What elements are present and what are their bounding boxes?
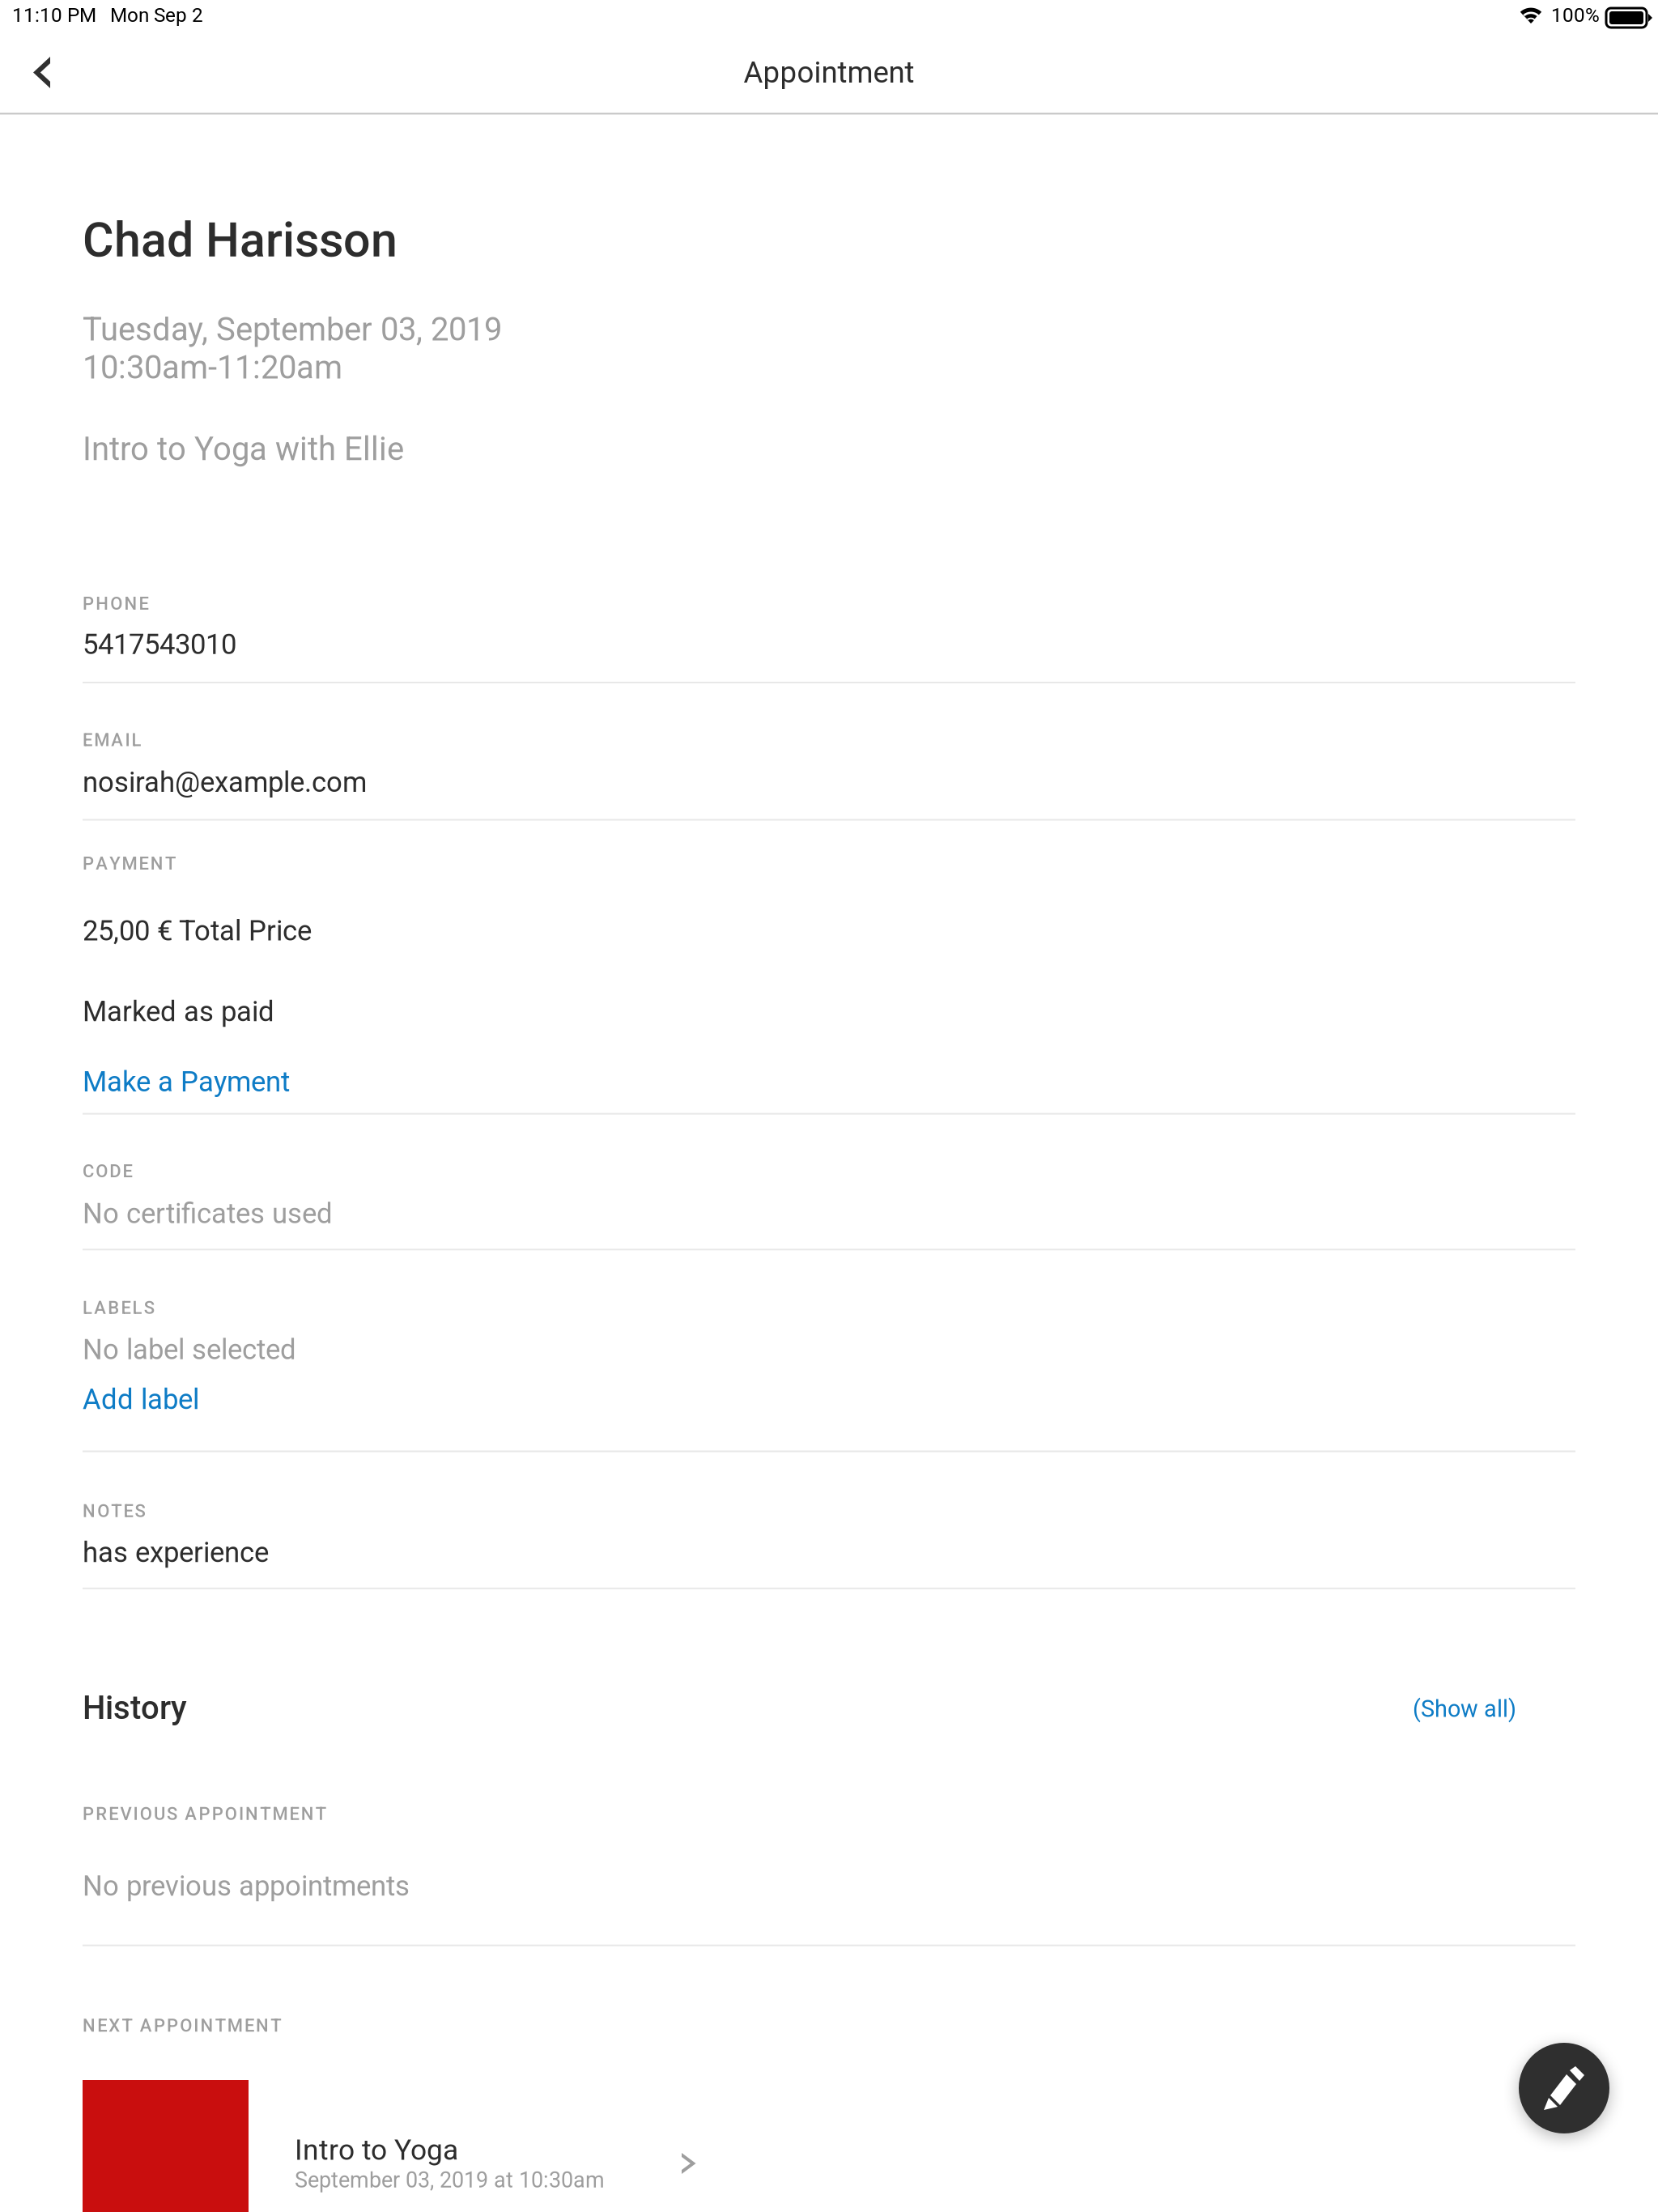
staticText: N: [83, 1501, 96, 1522]
staticText: T: [165, 853, 176, 874]
staticText: Marked as paid: [83, 995, 274, 1028]
button[interactable]: Make a Payment: [83, 1065, 290, 1098]
staticText: 5417543010: [83, 628, 236, 661]
staticText: E: [121, 1297, 131, 1318]
staticText: 11:10 PM: [12, 4, 96, 27]
staticText: N: [124, 593, 137, 614]
staticText: P: [167, 2015, 178, 2036]
staticText: P: [154, 2015, 165, 2036]
staticText: (Show all): [1413, 1695, 1516, 1723]
staticText: A: [185, 1803, 197, 1824]
staticText: N: [301, 1803, 314, 1824]
staticText: O: [110, 593, 122, 614]
staticText: P: [83, 593, 94, 614]
staticText: N: [150, 853, 163, 874]
staticText: A: [94, 1297, 106, 1318]
staticText: nosirah@example.com: [83, 766, 367, 799]
staticText: S: [144, 1297, 154, 1318]
staticText: L: [132, 1297, 142, 1318]
staticText: P: [83, 853, 94, 874]
staticText: A: [111, 730, 123, 750]
staticText: Appointment: [744, 55, 914, 90]
staticText: C: [83, 1161, 94, 1182]
staticText: E: [83, 730, 92, 750]
staticText: T: [215, 2015, 226, 2036]
staticText: T: [316, 1803, 326, 1824]
staticText: L: [132, 730, 141, 750]
staticText: M: [272, 1803, 288, 1824]
staticText: I: [194, 2015, 199, 2036]
staticText: O: [225, 1803, 237, 1824]
staticText: M: [227, 2015, 243, 2036]
staticText: History: [83, 1689, 187, 1727]
staticText: B: [108, 1297, 119, 1318]
staticText: N: [83, 2015, 96, 2036]
staticText: I: [239, 1803, 244, 1824]
staticText: Add label: [83, 1383, 199, 1416]
staticText: P: [212, 1803, 223, 1824]
staticText: E: [139, 593, 149, 614]
staticText: September 03, 2019 at 10:30am: [295, 2167, 605, 2193]
staticText: A: [96, 853, 108, 874]
staticText: N: [245, 1803, 258, 1824]
staticText: T: [271, 2015, 281, 2036]
staticText: O: [180, 2015, 192, 2036]
button[interactable]: Edit: [1519, 2043, 1609, 2133]
staticText: E: [244, 2015, 254, 2036]
button[interactable]: Back: [4, 36, 79, 110]
staticText: Intro to Yoga with Ellie: [83, 430, 404, 468]
staticText: N: [256, 2015, 269, 2036]
staticText: E: [97, 2015, 107, 2036]
staticText: O: [96, 1161, 108, 1182]
staticText: A: [140, 2015, 152, 2036]
staticText: E: [139, 853, 149, 874]
staticText: No previous appointments: [83, 1870, 410, 1902]
staticText: M: [122, 853, 137, 874]
staticText: has experience: [83, 1536, 269, 1569]
staticText: U: [154, 1803, 165, 1824]
staticText: E: [290, 1803, 299, 1824]
staticText: T: [260, 1803, 271, 1824]
staticText: O: [140, 1803, 152, 1824]
staticText: R: [96, 1803, 107, 1824]
staticText: X: [109, 2015, 120, 2036]
staticText: N: [200, 2015, 213, 2036]
button[interactable]: Add label: [83, 1383, 199, 1416]
staticText: P: [199, 1803, 210, 1824]
staticText: Make a Payment: [83, 1065, 290, 1098]
staticText: E: [123, 1501, 133, 1522]
staticText: No certificates used: [83, 1197, 333, 1230]
button[interactable]: Intro to Yoga: [83, 2080, 730, 2212]
staticText: Y: [110, 853, 120, 874]
staticText: T: [111, 1501, 122, 1522]
staticText: Intro to Yoga: [295, 2133, 458, 2167]
staticText: M: [94, 730, 109, 750]
staticText: E: [109, 1803, 118, 1824]
staticText: V: [120, 1803, 131, 1824]
staticText: I: [125, 730, 130, 750]
staticText: P: [83, 1803, 94, 1824]
staticText: Mon Sep 2: [110, 4, 203, 27]
staticText: T: [122, 2015, 132, 2036]
staticText: S: [135, 1501, 145, 1522]
staticText: L: [83, 1297, 92, 1318]
button[interactable]: (Show all): [1413, 1695, 1516, 1723]
staticText: S: [167, 1803, 177, 1824]
staticText: Chad Harisson: [83, 212, 397, 268]
staticText: 100%: [1551, 4, 1600, 27]
staticText: No label selected: [83, 1333, 296, 1366]
staticText: O: [97, 1501, 109, 1522]
staticText: D: [110, 1161, 121, 1182]
staticText: Tuesday, September 03, 2019 10:30am-11:2…: [83, 311, 502, 386]
staticText: H: [96, 593, 109, 614]
staticText: I: [133, 1803, 138, 1824]
staticText: E: [123, 1161, 132, 1182]
staticText: 25,00 € Total Price: [83, 914, 312, 947]
